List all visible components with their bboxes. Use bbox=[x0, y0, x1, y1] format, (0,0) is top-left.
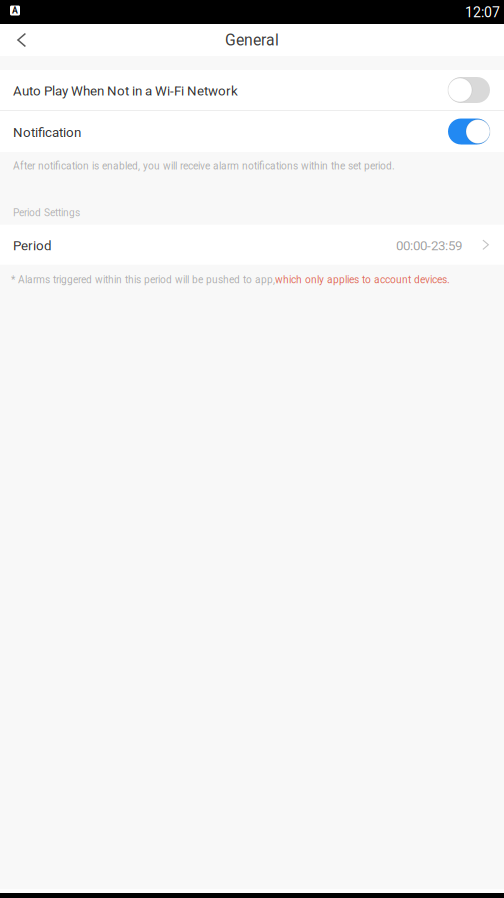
staticText: A bbox=[12, 5, 18, 16]
staticText: 12:07 bbox=[465, 4, 500, 21]
button[interactable]: Back bbox=[0, 24, 44, 56]
staticText: Notification bbox=[13, 125, 81, 140]
staticText: Period bbox=[13, 238, 52, 253]
staticText: After notification is enabled, you will … bbox=[13, 160, 395, 172]
staticText: 00:00-23:59 bbox=[396, 238, 462, 253]
button[interactable]: Period bbox=[0, 225, 504, 265]
staticText: Period Settings bbox=[13, 207, 80, 219]
staticText: General bbox=[225, 31, 279, 49]
staticText: which only applies to account devices. bbox=[275, 274, 450, 286]
staticText: Auto Play When Not in a Wi-Fi Network bbox=[13, 83, 238, 99]
staticText: * Alarms triggered within this period wi… bbox=[11, 274, 275, 286]
button[interactable]: Auto Play When Not in a Wi-Fi Network bbox=[0, 70, 504, 110]
button[interactable]: Notification bbox=[0, 111, 504, 152]
